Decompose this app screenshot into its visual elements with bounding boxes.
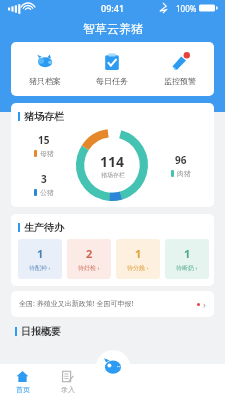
button[interactable]: 每日任务 xyxy=(78,42,146,96)
button[interactable]: 首页 xyxy=(0,364,45,400)
staticText: 2 xyxy=(86,246,93,261)
button[interactable]: 猪只档案 xyxy=(11,42,78,96)
other: 监控预警 xyxy=(170,52,190,72)
staticText: 1 xyxy=(37,246,44,261)
other: 每日任务 xyxy=(102,52,122,72)
staticText: 生产待办 xyxy=(24,221,64,234)
button[interactable]: 全国: 养殖业又出新政策! 全国可申报! xyxy=(11,291,214,317)
staticText: 待配种 › xyxy=(29,264,51,272)
staticText: 待妊检 › xyxy=(78,264,100,272)
button[interactable]: 2 xyxy=(67,239,111,279)
other: 猪只档案 xyxy=(35,52,55,72)
staticText: 15 xyxy=(38,133,50,147)
staticText: 肉猪 xyxy=(177,169,191,178)
staticText: 114 xyxy=(100,152,125,171)
staticText: 100% xyxy=(176,3,197,14)
staticText: 1 xyxy=(135,246,142,261)
staticText: 猪只档案 xyxy=(29,76,61,86)
staticText: 09:41 xyxy=(101,2,125,14)
staticText: 录入 xyxy=(61,385,75,394)
staticText: 猪场存栏 xyxy=(101,171,125,179)
staticText: 监控预警 xyxy=(164,76,196,86)
staticText: 首页 xyxy=(16,385,30,394)
button[interactable]: 1 xyxy=(116,239,160,279)
other: 首页 xyxy=(16,370,29,383)
staticText: 待断奶 › xyxy=(176,264,198,272)
staticText: 3 xyxy=(41,172,47,186)
button[interactable]: 添加 xyxy=(96,350,130,384)
staticText: 待分娩 › xyxy=(127,264,149,272)
button[interactable]: 1 xyxy=(18,239,62,279)
button[interactable]: 1 xyxy=(165,239,209,279)
staticText: 1 xyxy=(184,246,191,261)
other: 录入 xyxy=(61,370,74,383)
button[interactable]: 监控预警 xyxy=(146,42,214,96)
staticText: 日报概要 xyxy=(21,325,61,338)
staticText: 每日任务 xyxy=(96,76,128,86)
staticText: 96 xyxy=(175,153,187,167)
staticText: 母猪 xyxy=(40,149,54,158)
staticText: › xyxy=(203,298,206,310)
staticText: 全国: 养殖业又出新政策! 全国可申报! xyxy=(19,299,197,309)
staticText: 猪场存栏 xyxy=(24,110,64,123)
staticText: 智草云养猪 xyxy=(83,21,143,36)
staticText: 公猪 xyxy=(40,188,54,197)
button[interactable]: 录入 xyxy=(45,364,90,400)
